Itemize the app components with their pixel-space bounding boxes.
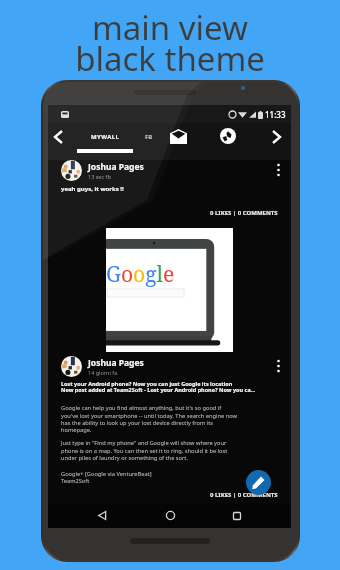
staticText: Lost your Android phone? Now you can jus… — [61, 380, 256, 394]
staticText: MYWALL — [91, 133, 120, 141]
staticText: 11:33 — [265, 109, 286, 120]
staticText: Joshua Pages — [88, 357, 144, 369]
button[interactable]: Next tab — [267, 126, 285, 148]
staticText: Google can help you find almost anything… — [61, 404, 237, 433]
staticText: 0 LIKES | 0 COMMENTS — [210, 491, 278, 499]
staticText: 14 giorni fa — [88, 369, 118, 376]
staticText: Google — [106, 260, 175, 289]
staticText: yeah guys, it works !! — [61, 185, 124, 193]
staticText: 13 sec fb — [88, 173, 111, 180]
staticText: Just type in "Find my phone" and Google … — [61, 439, 228, 461]
button[interactable]: Previous tab — [49, 126, 67, 148]
staticText: Joshua Pages — [88, 161, 144, 173]
button[interactable]: Recent apps — [224, 503, 250, 528]
button[interactable]: Browser — [215, 124, 241, 148]
button[interactable]: FB — [136, 126, 162, 148]
button[interactable]: More options — [272, 358, 284, 374]
button[interactable]: Back — [89, 503, 115, 528]
button[interactable]: MYWALL — [80, 126, 130, 148]
staticText: Google+ [Google via VentureBeat] Team2So… — [61, 470, 152, 485]
button[interactable]: Messages — [165, 124, 191, 148]
button[interactable]: Home — [157, 503, 183, 528]
staticText: FB — [145, 133, 153, 141]
staticText: 0 LIKES | 0 COMMENTS — [210, 209, 278, 217]
staticText: main view black theme — [75, 5, 265, 80]
button[interactable]: Compose post — [246, 470, 271, 495]
button[interactable]: More options — [272, 162, 284, 178]
